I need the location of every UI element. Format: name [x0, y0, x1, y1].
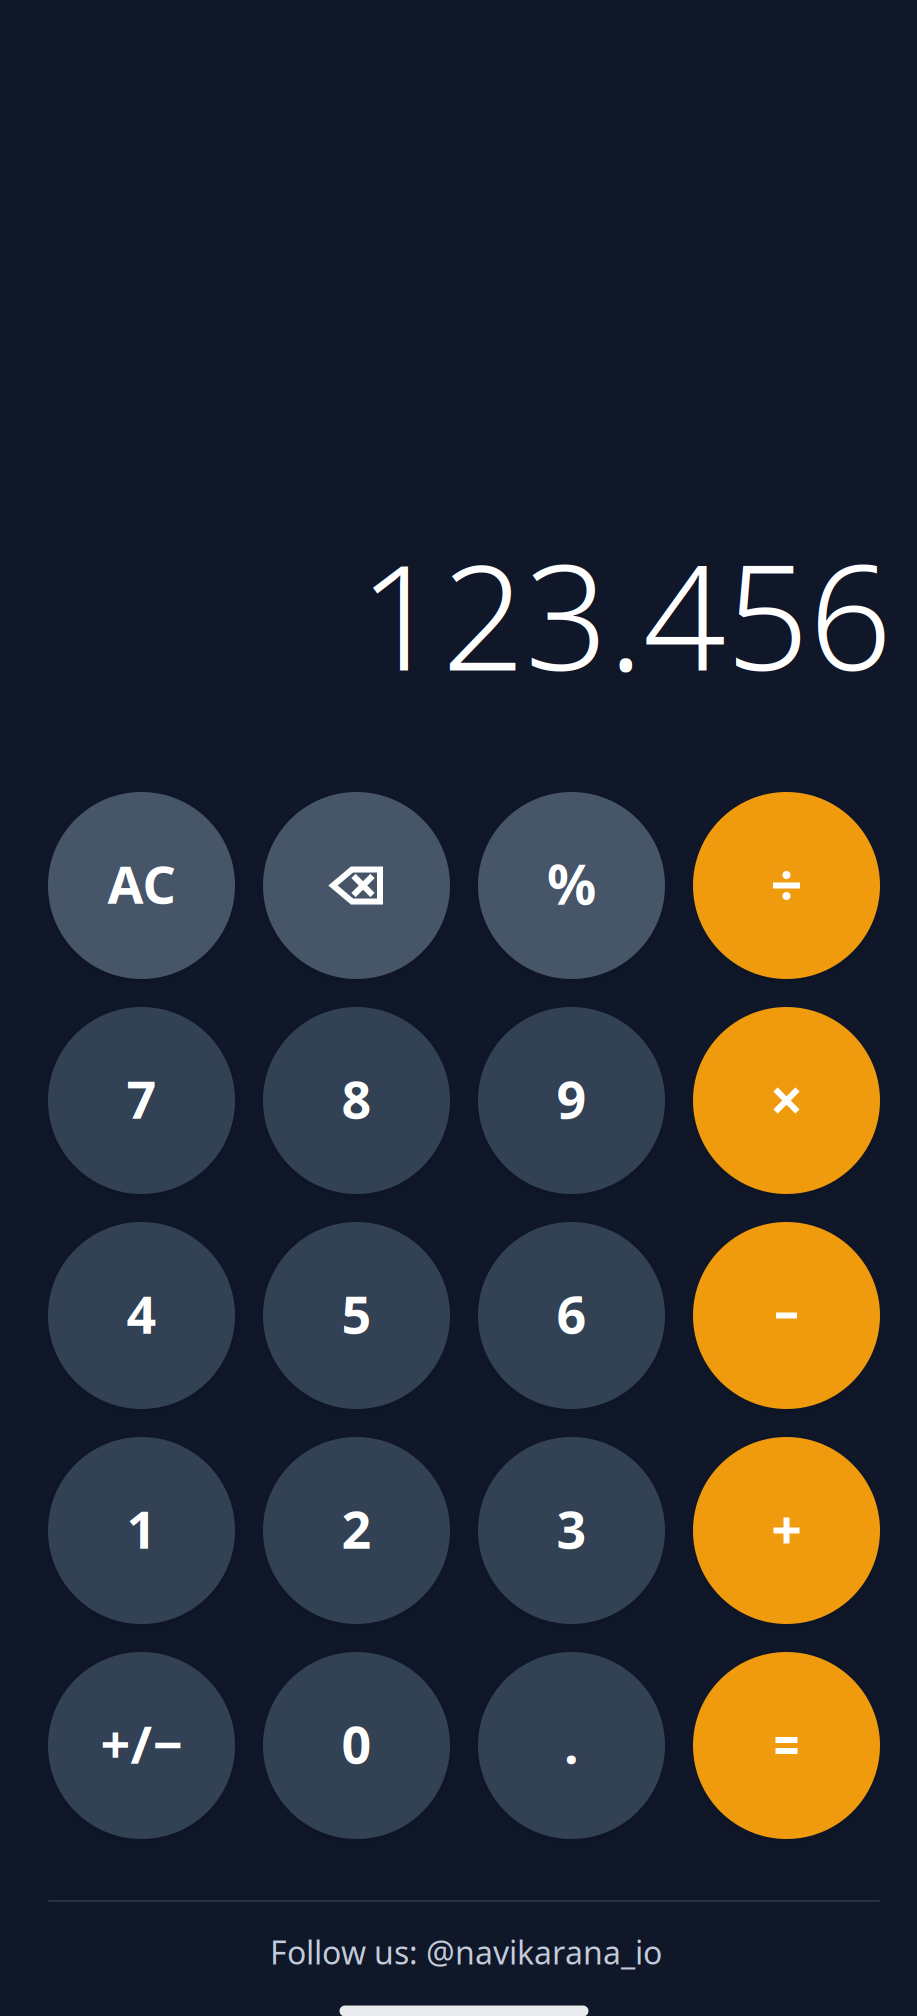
- staticText: %: [547, 847, 596, 920]
- staticText: 7: [126, 1064, 156, 1133]
- staticText: 8: [341, 1064, 371, 1133]
- staticText: 9: [556, 1064, 586, 1133]
- staticText: 6: [556, 1279, 586, 1348]
- button[interactable]: 2: [263, 1437, 450, 1624]
- button[interactable]: 6: [478, 1222, 665, 1409]
- staticText: 4: [126, 1279, 156, 1348]
- button[interactable]: Minus: [693, 1222, 880, 1409]
- staticText: 3: [556, 1494, 586, 1563]
- button[interactable]: 0: [263, 1652, 450, 1839]
- button[interactable]: +/−: [48, 1652, 235, 1839]
- button[interactable]: 3: [478, 1437, 665, 1624]
- button[interactable]: Plus: [693, 1437, 880, 1624]
- staticText: Follow us: @navikarana_io: [270, 1931, 662, 1973]
- button[interactable]: AC: [48, 792, 235, 979]
- staticText: 123.456: [359, 517, 892, 710]
- button[interactable]: .: [478, 1652, 665, 1839]
- button[interactable]: Delete: [263, 792, 450, 979]
- button[interactable]: 8: [263, 1007, 450, 1194]
- staticText: 2: [341, 1494, 371, 1563]
- staticText: 5: [341, 1279, 371, 1348]
- button[interactable]: Follow us: @navikarana_io: [7, 1932, 917, 1972]
- button[interactable]: 9: [478, 1007, 665, 1194]
- staticText: 0: [341, 1709, 371, 1778]
- button[interactable]: Equals: [693, 1652, 880, 1839]
- button[interactable]: Divide: [693, 792, 880, 979]
- button[interactable]: 4: [48, 1222, 235, 1409]
- button[interactable]: 1: [48, 1437, 235, 1624]
- staticText: +/−: [100, 1709, 182, 1778]
- staticText: AC: [107, 849, 175, 918]
- button[interactable]: %: [478, 792, 665, 979]
- button[interactable]: Multiply: [693, 1007, 880, 1194]
- button[interactable]: 5: [263, 1222, 450, 1409]
- staticText: 1: [126, 1494, 156, 1563]
- button[interactable]: 7: [48, 1007, 235, 1194]
- staticText: .: [564, 1709, 579, 1778]
